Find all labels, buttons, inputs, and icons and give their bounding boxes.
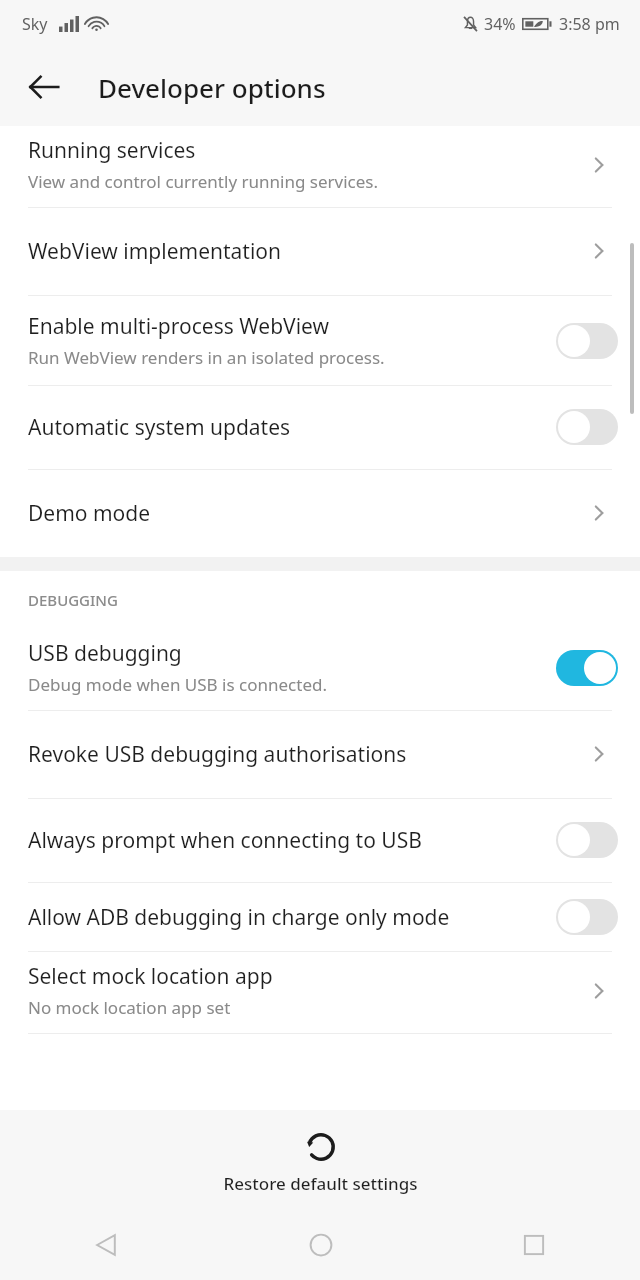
staticText: 3:58 pm xyxy=(559,13,620,35)
staticText: Running services xyxy=(28,136,196,165)
button[interactable]: Demo mode xyxy=(0,470,640,557)
staticText: 34% xyxy=(484,13,516,35)
button[interactable]: Running services xyxy=(0,126,640,207)
staticText: Demo mode xyxy=(28,499,151,528)
button[interactable]: Allow ADB debugging in charge only mode xyxy=(0,883,640,951)
staticText: Debug mode when USB is connected. xyxy=(28,673,327,696)
button[interactable]: Back xyxy=(12,55,76,119)
button[interactable]: Enable multi-process WebView xyxy=(0,296,640,385)
button[interactable]: Toggle off xyxy=(556,899,618,935)
button[interactable]: Toggle on xyxy=(556,650,618,686)
button[interactable]: Restore default settings xyxy=(0,1110,640,1210)
staticText: Sky xyxy=(22,13,48,35)
button[interactable]: Revoke USB debugging authorisations xyxy=(0,711,640,798)
staticText: Run WebView renders in an isolated proce… xyxy=(28,346,385,369)
staticText: USB debugging xyxy=(28,639,182,668)
button[interactable]: Always prompt when connecting to USB xyxy=(0,799,640,882)
button[interactable]: Home xyxy=(214,1210,427,1280)
staticText: DEBUGGING xyxy=(28,590,118,610)
button[interactable]: Toggle off xyxy=(556,409,618,445)
button[interactable]: Back xyxy=(0,1210,214,1280)
button[interactable]: Open xyxy=(578,734,618,774)
button[interactable]: Open xyxy=(578,493,618,533)
button[interactable]: Open xyxy=(578,145,618,185)
staticText: Select mock location app xyxy=(28,962,273,991)
button[interactable]: Open xyxy=(578,971,618,1011)
button[interactable]: Select mock location app xyxy=(0,952,640,1033)
staticText: Revoke USB debugging authorisations xyxy=(28,740,407,769)
staticText: Allow ADB debugging in charge only mode xyxy=(28,903,450,932)
staticText: Always prompt when connecting to USB xyxy=(28,826,422,855)
button[interactable]: USB debugging xyxy=(0,629,640,710)
staticText: Enable multi-process WebView xyxy=(28,312,330,341)
button[interactable]: WebView implementation xyxy=(0,208,640,295)
staticText: No mock location app set xyxy=(28,996,231,1019)
button[interactable]: Automatic system updates xyxy=(0,386,640,469)
button[interactable]: Toggle off xyxy=(556,822,618,858)
button[interactable]: Recents xyxy=(427,1210,640,1280)
button[interactable]: Toggle off xyxy=(556,323,618,359)
staticText: Automatic system updates xyxy=(28,413,291,442)
staticText: View and control currently running servi… xyxy=(28,170,378,193)
button[interactable]: Open xyxy=(578,231,618,271)
staticText: Developer options xyxy=(98,70,326,105)
staticText: WebView implementation xyxy=(28,237,282,266)
staticText: Restore default settings xyxy=(223,1172,418,1195)
